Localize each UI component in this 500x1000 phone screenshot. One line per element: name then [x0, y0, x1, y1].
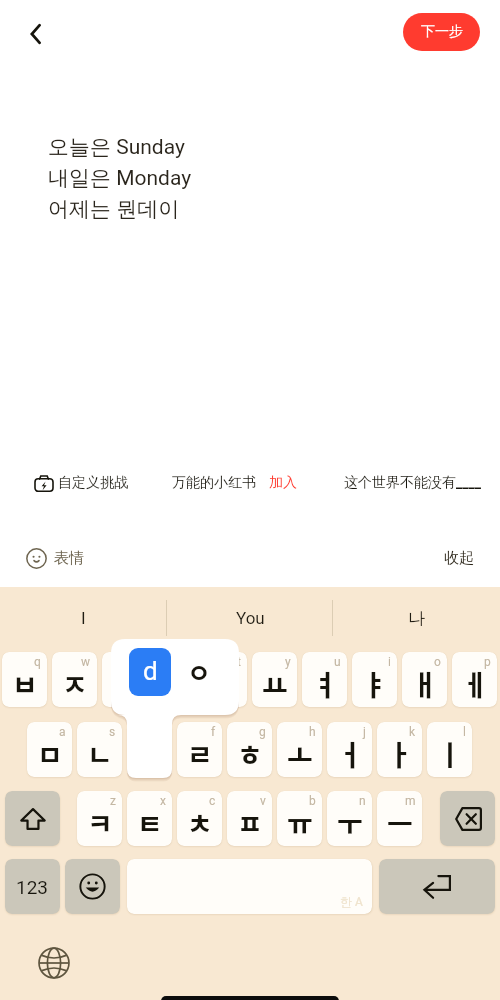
button[interactable]: f	[177, 722, 222, 777]
staticText: 这个世界不能没有____	[344, 474, 482, 492]
button[interactable]: d	[129, 648, 171, 696]
staticText: ㅐ	[412, 664, 438, 705]
button[interactable]: g	[227, 722, 272, 777]
staticText: ㅌ	[137, 803, 163, 844]
button[interactable]: a	[27, 722, 72, 777]
staticText: p	[484, 655, 491, 669]
staticText: 한 A	[340, 894, 363, 909]
button[interactable]: 나	[333, 587, 500, 649]
button[interactable]: x	[127, 791, 172, 846]
button[interactable]: Enter	[379, 859, 495, 914]
button[interactable]: ㅇ	[178, 648, 220, 696]
button[interactable]: 这个世界不能没有____	[344, 466, 482, 500]
staticText: ㅠ	[287, 803, 313, 844]
button[interactable]: c	[177, 791, 222, 846]
staticText: ㅗ	[287, 734, 313, 775]
button[interactable]: Change keyboard	[30, 939, 78, 987]
button[interactable]: b	[277, 791, 322, 846]
staticText: You	[236, 608, 265, 628]
staticText: ㅁ	[37, 734, 63, 775]
staticText: m	[405, 794, 416, 808]
staticText: 下一步	[421, 23, 463, 41]
staticText: ㄷ	[112, 664, 138, 705]
staticText: ㅋ	[87, 803, 113, 844]
button[interactable]: z	[77, 791, 122, 846]
button[interactable]: I	[0, 587, 167, 649]
staticText: b	[309, 794, 316, 808]
staticText: q	[34, 655, 41, 669]
staticText: 自定义挑战	[58, 474, 128, 492]
staticText: f	[211, 725, 216, 739]
button[interactable]: 下一步	[403, 13, 480, 51]
button[interactable]: Back	[12, 10, 60, 58]
staticText: o	[434, 655, 441, 669]
staticText: ㄹ	[187, 734, 213, 775]
staticText: l	[463, 725, 466, 739]
staticText: z	[110, 794, 116, 808]
staticText: 收起	[444, 549, 474, 568]
button[interactable]: t	[202, 652, 247, 707]
button[interactable]: u	[302, 652, 347, 707]
button[interactable]: You	[167, 587, 333, 649]
button[interactable]: w	[52, 652, 97, 707]
staticText: ㄴ	[87, 734, 113, 775]
button[interactable]: s	[77, 722, 122, 777]
button[interactable]: k	[377, 722, 422, 777]
staticText: n	[359, 794, 366, 808]
button[interactable]: p	[452, 652, 497, 707]
button[interactable]: r	[152, 652, 197, 707]
button[interactable]: o	[402, 652, 447, 707]
button[interactable]: Emoji	[65, 859, 120, 914]
staticText: j	[363, 725, 366, 739]
staticText: s	[109, 725, 116, 739]
staticText: 万能的小红书	[172, 474, 256, 492]
staticText: c	[209, 794, 216, 808]
button[interactable]: h	[277, 722, 322, 777]
button[interactable]: 万能的小红书	[172, 466, 297, 500]
staticText: 어제는 뭔데이	[48, 196, 180, 222]
button[interactable]: Shift	[5, 791, 60, 846]
button[interactable]: 收起	[444, 540, 474, 576]
staticText: ㅓ	[337, 734, 363, 775]
staticText: ㅏ	[387, 734, 413, 775]
staticText: 나	[408, 608, 425, 629]
staticText: i	[388, 655, 391, 669]
staticText: a	[59, 725, 66, 739]
button[interactable]: Numbers	[5, 859, 60, 914]
button[interactable]: v	[227, 791, 272, 846]
button[interactable]: Space	[127, 859, 372, 914]
button[interactable]: d	[127, 722, 172, 777]
staticText: 加入	[269, 474, 297, 492]
button[interactable]: Backspace	[440, 791, 495, 846]
staticText: ㄱ	[162, 664, 188, 705]
staticText: 내일은 Monday	[48, 165, 192, 191]
button[interactable]: y	[252, 652, 297, 707]
staticText: ㅜ	[337, 803, 363, 844]
staticText: 오늘은 Sunday	[48, 134, 185, 160]
button[interactable]: 自定义挑战	[34, 466, 128, 500]
button[interactable]: n	[327, 791, 372, 846]
staticText: 123	[16, 876, 49, 898]
staticText: ㅡ	[387, 803, 413, 844]
staticText: k	[409, 725, 416, 739]
staticText: x	[160, 794, 166, 808]
button[interactable]: i	[352, 652, 397, 707]
button[interactable]: j	[327, 722, 372, 777]
staticText: g	[259, 725, 266, 739]
staticText: u	[334, 655, 341, 669]
button[interactable]: l	[427, 722, 472, 777]
staticText: ㅊ	[187, 803, 213, 844]
staticText: d	[143, 656, 158, 686]
staticText: t	[237, 655, 241, 669]
button[interactable]: m	[377, 791, 422, 846]
button[interactable]: q	[2, 652, 47, 707]
staticText: ㅎ	[237, 734, 263, 775]
button[interactable]: 表情	[26, 540, 84, 576]
button[interactable]: e	[102, 652, 147, 707]
staticText: v	[260, 794, 266, 808]
staticText: w	[81, 655, 91, 669]
staticText: I	[81, 608, 86, 628]
